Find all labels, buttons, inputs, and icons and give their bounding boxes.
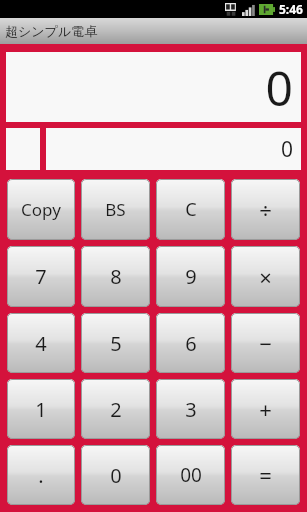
staticText: 8 [110,263,122,290]
button[interactable]: + [231,379,300,439]
button[interactable]: 1 [7,379,75,439]
staticText: 00 [180,462,202,488]
other: Signal [242,3,256,16]
staticText: 超シンプル電卓 [5,23,98,39]
staticText: C [185,197,197,222]
staticText: 0 [110,462,122,489]
staticText: 1 [35,396,47,423]
button[interactable]: C [156,179,225,240]
other: Battery charging [259,4,275,15]
button[interactable]: . [7,445,75,505]
button[interactable]: ÷ [231,179,300,240]
button[interactable]: 0 [81,445,150,505]
button[interactable]: 0 [6,52,301,122]
button[interactable]: BS [81,179,150,240]
button[interactable]: = [231,445,300,505]
staticText: = [259,460,272,490]
button[interactable]: 8 [81,246,150,307]
button[interactable]: 4 [7,313,75,373]
staticText: 7 [35,263,47,290]
staticText: 0 [265,55,293,120]
button[interactable]: Copy [7,179,75,240]
staticText: + [259,394,272,424]
staticText: . [38,462,44,489]
button[interactable]: × [231,246,300,307]
button[interactable]: 2 [81,379,150,439]
button[interactable]: 5 [81,313,150,373]
button[interactable]: − [231,313,300,373]
staticText: 5:46 [279,1,303,17]
button[interactable]: 7 [7,246,75,307]
button[interactable]: 9 [156,246,225,307]
staticText: 2 [110,396,122,423]
staticText: − [259,328,272,358]
button[interactable]: 00 [156,445,225,505]
staticText: BS [105,198,126,221]
staticText: × [259,262,272,292]
staticText: 4 [35,330,47,357]
button[interactable]: 0 [46,128,301,170]
staticText: Copy [21,198,61,221]
staticText: ÷ [259,195,272,225]
staticText: 6 [185,330,197,357]
button[interactable]: 6 [156,313,225,373]
staticText: 9 [185,263,197,290]
button[interactable]: 3 [156,379,225,439]
staticText: 0 [280,135,293,164]
staticText: 5 [110,330,122,357]
other: 3G [225,3,239,16]
staticText: 3 [185,396,197,423]
